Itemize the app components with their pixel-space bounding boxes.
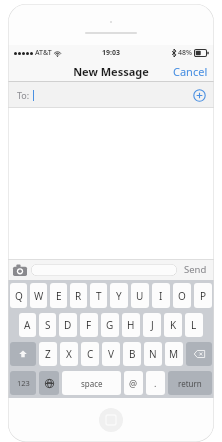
staticText: E xyxy=(56,289,62,303)
staticText: J xyxy=(151,318,154,332)
button[interactable]: W xyxy=(30,283,47,308)
button[interactable]: H xyxy=(122,313,140,337)
staticText: A xyxy=(24,318,31,332)
button[interactable]: N xyxy=(144,342,162,366)
staticText: AT&T xyxy=(35,48,52,58)
button[interactable]: Q xyxy=(10,283,27,308)
button[interactable]: V xyxy=(102,342,120,366)
button[interactable]: Y xyxy=(110,283,128,308)
staticText: F xyxy=(86,318,92,332)
button[interactable]: S xyxy=(39,313,56,337)
staticText: V xyxy=(108,347,114,361)
button[interactable]: Shift xyxy=(10,342,36,366)
button[interactable]: E xyxy=(50,283,67,308)
button[interactable]: U xyxy=(131,283,149,308)
button[interactable]: return xyxy=(168,371,212,395)
staticText: To: xyxy=(17,89,30,101)
staticText: R xyxy=(75,289,82,303)
staticText: B xyxy=(129,347,136,361)
staticText: T xyxy=(96,289,102,303)
button[interactable]: J xyxy=(143,313,161,337)
button[interactable]: A xyxy=(19,313,36,337)
staticText: L xyxy=(191,318,197,332)
staticText: return xyxy=(178,378,202,389)
button[interactable]: I xyxy=(152,283,170,308)
staticText: 19:03 xyxy=(102,48,120,58)
staticText: New Message xyxy=(73,64,149,79)
button[interactable]: K xyxy=(164,313,182,337)
staticText: G xyxy=(106,318,114,332)
staticText: S xyxy=(45,318,51,332)
button[interactable]: To: xyxy=(8,82,214,108)
button[interactable]: Change keyboard language xyxy=(39,371,59,395)
button[interactable]: . xyxy=(146,371,165,395)
button[interactable]: B xyxy=(123,342,141,366)
staticText: I xyxy=(159,289,163,303)
staticText: 123 xyxy=(17,378,30,388)
staticText: . xyxy=(154,377,157,389)
staticText: 48% xyxy=(178,48,192,58)
button[interactable]: Add contact xyxy=(193,89,206,102)
button[interactable]: Z xyxy=(39,342,57,366)
staticText: P xyxy=(200,289,207,303)
button[interactable]: R xyxy=(70,283,87,308)
staticText: X xyxy=(66,347,72,361)
button[interactable]: P xyxy=(194,283,212,308)
staticText: M xyxy=(169,347,179,361)
button[interactable] xyxy=(31,264,177,276)
button[interactable]: X xyxy=(60,342,78,366)
button[interactable]: G xyxy=(101,313,119,337)
button[interactable]: space xyxy=(62,371,121,395)
staticText: Y xyxy=(116,289,122,303)
staticText: space xyxy=(81,378,103,389)
staticText: D xyxy=(64,318,72,332)
staticText: O xyxy=(178,289,186,303)
button[interactable]: T xyxy=(90,283,107,308)
button[interactable]: Send xyxy=(182,263,209,276)
staticText: Z xyxy=(45,347,51,361)
button[interactable]: O xyxy=(173,283,191,308)
staticText: Q xyxy=(15,289,23,303)
staticText: H xyxy=(127,318,135,332)
button[interactable]: F xyxy=(80,313,98,337)
button[interactable]: 123 xyxy=(10,371,36,395)
staticText: K xyxy=(170,318,177,332)
button[interactable]: M xyxy=(165,342,183,366)
staticText: Cancel xyxy=(173,64,208,79)
button[interactable]: Camera xyxy=(13,264,27,276)
staticText: Send xyxy=(184,263,207,276)
button[interactable]: Backspace xyxy=(186,342,212,366)
button[interactable]: Cancel xyxy=(167,60,214,82)
staticText: @ xyxy=(129,377,138,389)
staticText: W xyxy=(34,289,44,303)
staticText: C xyxy=(87,347,94,361)
button[interactable]: L xyxy=(185,313,203,337)
button[interactable]: C xyxy=(81,342,99,366)
staticText: U xyxy=(136,289,144,303)
button[interactable]: D xyxy=(59,313,77,337)
button[interactable]: @ xyxy=(124,371,143,395)
staticText: N xyxy=(149,347,157,361)
